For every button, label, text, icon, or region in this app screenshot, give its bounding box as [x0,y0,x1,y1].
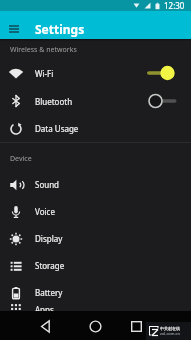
button[interactable]: Sound [0,171,191,198]
staticText: Wireless & networks [10,45,77,55]
staticText: Display [35,233,63,244]
staticText: 12:30 [164,0,185,11]
staticText: Device [10,154,32,164]
staticText: Wi-Fi [35,68,54,79]
staticText: Bluetooth [35,96,73,107]
button[interactable]: Battery [0,279,191,306]
staticText: Data Usage [35,123,79,134]
button[interactable] [129,319,143,333]
staticText: Apps [35,304,54,315]
staticText: Battery [35,287,63,298]
button[interactable]: Apps [0,295,191,323]
button[interactable]: Storage [0,252,191,279]
button[interactable] [38,319,52,333]
button[interactable]: Display [0,225,191,252]
button[interactable] [88,319,102,333]
button[interactable]: Data Usage [0,115,191,142]
button[interactable]: Voice [0,198,191,225]
staticText: zol.com.cn [160,331,180,336]
button[interactable]: Bluetooth [0,87,191,115]
staticText: Voice [35,206,55,217]
staticText: Settings [35,21,85,37]
staticText: Storage [35,260,65,271]
button[interactable] [9,25,19,33]
button[interactable] [146,93,178,109]
staticText: Sound [35,179,60,190]
staticText: 中关村在线 [160,326,180,331]
button[interactable] [146,65,178,81]
button[interactable]: Wi-Fi [0,59,191,87]
